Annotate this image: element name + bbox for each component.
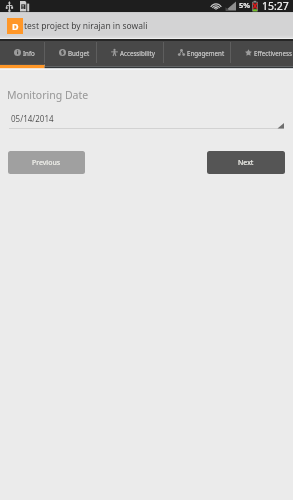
staticText: Next	[238, 158, 254, 168]
button[interactable]: Info	[0, 41, 45, 64]
button[interactable]: 05/14/2014	[9, 113, 284, 129]
staticText: Effectiveness	[254, 49, 292, 57]
staticText: 5%	[239, 0, 251, 10]
staticText: D	[12, 20, 19, 32]
button[interactable]: Accessibility	[97, 41, 164, 64]
staticText: Previous	[32, 158, 61, 168]
staticText: 05/14/2014	[11, 113, 54, 124]
button[interactable]: Engagement	[164, 41, 231, 64]
button[interactable]: Previous	[8, 151, 85, 174]
staticText: Monitoring Date	[7, 88, 89, 102]
staticText: test project by nirajan in sowali	[24, 20, 148, 32]
staticText: Budget	[68, 49, 90, 57]
button[interactable]: Effectiveness	[231, 41, 293, 64]
staticText: Accessibility	[120, 49, 155, 57]
button[interactable]: Budget	[45, 41, 97, 64]
staticText: Engagement	[187, 49, 225, 57]
button[interactable]: Next	[207, 151, 285, 174]
staticText: Info	[23, 49, 35, 57]
staticText: 15:27	[262, 0, 289, 11]
